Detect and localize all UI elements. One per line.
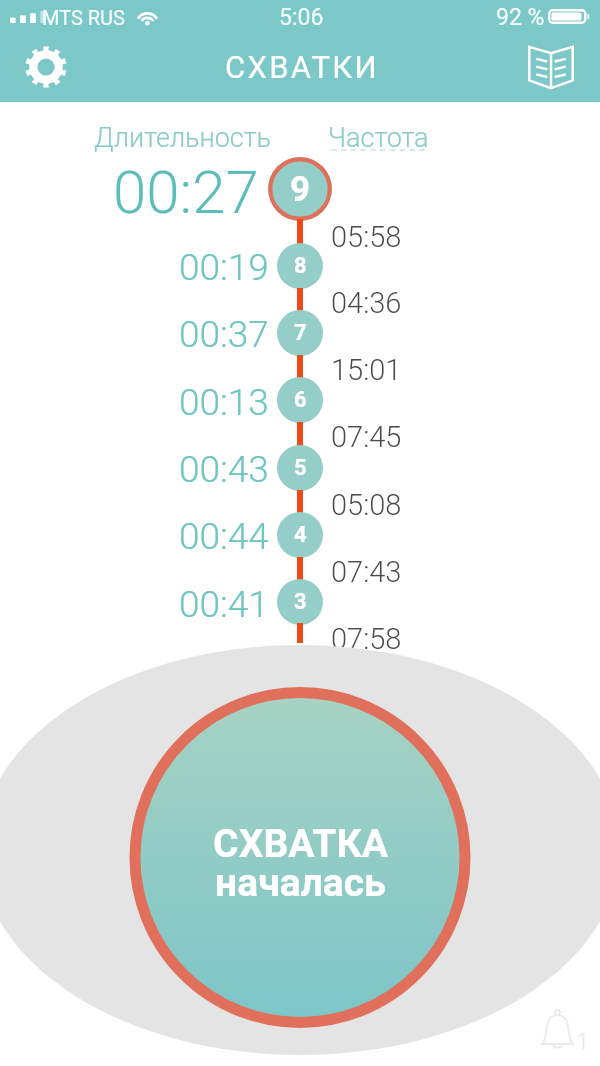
button[interactable]: 9	[268, 157, 332, 221]
staticText: 00:13	[179, 381, 269, 424]
button[interactable]: 00:44	[20, 506, 269, 566]
staticText: 05:58	[331, 220, 402, 254]
button[interactable]: 5	[277, 445, 323, 491]
staticText: 00:37	[179, 313, 269, 356]
staticText: 05:08	[331, 488, 402, 522]
button[interactable]: 00:43	[20, 439, 269, 499]
button[interactable]: 00:13	[20, 372, 269, 432]
button[interactable]: 00:41	[20, 574, 269, 634]
button[interactable]: 3	[277, 579, 323, 625]
staticText: 04:36	[331, 286, 402, 320]
staticText: 07:45	[331, 420, 402, 454]
staticText: 07:58	[331, 622, 402, 656]
button[interactable]: 4	[277, 512, 323, 558]
button[interactable]: 07:58	[331, 617, 431, 661]
staticText: СХВАТКИ	[225, 49, 379, 85]
staticText: 5:06	[279, 4, 324, 31]
button[interactable]: 05:08	[331, 483, 431, 527]
button[interactable]: 6	[277, 377, 323, 423]
staticText: 00:41	[179, 583, 269, 626]
staticText: 1	[576, 1028, 590, 1056]
staticText: 3	[294, 589, 307, 615]
staticText: Длительность	[94, 122, 272, 154]
button[interactable]: 7	[277, 310, 323, 356]
button[interactable]: Частота	[328, 121, 434, 155]
staticText: 00:44	[179, 515, 269, 558]
staticText: 4	[294, 522, 307, 548]
staticText: Частота	[328, 122, 429, 154]
button[interactable]: 07:45	[331, 415, 431, 459]
staticText: 00:43	[179, 448, 269, 491]
button[interactable]: 05:58	[331, 215, 431, 259]
button[interactable]: СХВАТКА	[130, 688, 470, 1028]
staticText: 07:43	[331, 555, 402, 589]
button[interactable]: 00:37	[20, 304, 269, 364]
staticText: 7	[294, 320, 307, 346]
button[interactable]: 04:36	[331, 281, 431, 325]
staticText: 5	[294, 455, 307, 481]
staticText: началась	[215, 860, 386, 906]
button[interactable]: 15:01	[331, 348, 431, 392]
button[interactable]: Settings	[25, 43, 91, 91]
staticText: 00:19	[179, 246, 269, 289]
button[interactable]: Notifications	[538, 1006, 594, 1060]
staticText: 92 %	[496, 4, 545, 31]
button[interactable]: 00:19	[20, 237, 269, 297]
staticText: СХВАТКА	[213, 821, 388, 867]
staticText: 15:01	[331, 353, 402, 387]
staticText: 9	[290, 169, 311, 210]
staticText: MTS RUS	[42, 6, 125, 29]
button[interactable]: 8	[277, 243, 323, 289]
staticText: 6	[294, 387, 307, 413]
button[interactable]: 00:27	[20, 157, 259, 217]
button[interactable]: Journal	[518, 41, 584, 93]
button[interactable]: Длительность	[94, 121, 274, 155]
button[interactable]: 07:43	[331, 550, 431, 594]
staticText: 00:27	[113, 157, 259, 217]
staticText: 8	[294, 253, 307, 279]
